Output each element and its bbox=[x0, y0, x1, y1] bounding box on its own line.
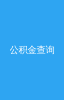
staticText: 公积金查询 bbox=[9, 44, 54, 56]
